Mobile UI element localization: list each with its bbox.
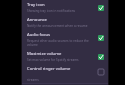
staticText: Announce — [27, 17, 47, 23]
staticText: Showing tray icon in notifications — [27, 9, 76, 13]
button[interactable]: Audio focus — [22, 30, 108, 49]
button[interactable]: Enabled — [96, 33, 105, 42]
button[interactable]: Enabled — [96, 3, 105, 12]
button[interactable]: Disabled — [96, 67, 105, 76]
button[interactable]: Enabled — [96, 52, 105, 61]
staticText: streams — [27, 78, 39, 82]
staticText: Maximize volume — [27, 51, 62, 57]
staticText: Audio focus — [27, 32, 51, 38]
button[interactable]: Announce — [22, 15, 108, 30]
button[interactable]: Tray icon — [22, 0, 108, 15]
staticText: Request other audio sources to reduce th… — [27, 39, 93, 47]
staticText: Notify the announcement when a resume — [27, 24, 88, 28]
staticText: Set max volume for Spotify streams — [27, 58, 79, 62]
button[interactable]: Control ringer volume — [22, 64, 108, 78]
staticText: Control ringer volume — [27, 66, 71, 72]
staticText: Tray icon — [27, 2, 45, 8]
button[interactable]: Maximize volume — [22, 49, 108, 64]
